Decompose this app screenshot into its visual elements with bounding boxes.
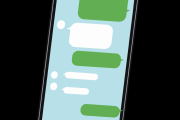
button[interactable]: Chat conversation on a phone [0, 0, 180, 120]
